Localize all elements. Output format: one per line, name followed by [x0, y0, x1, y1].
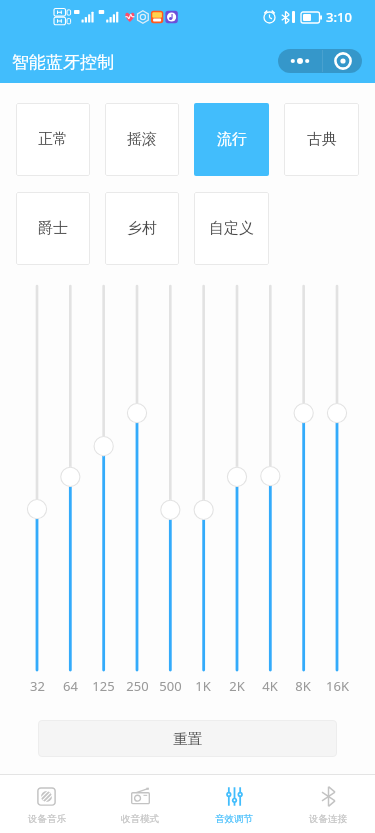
staticText: 1K	[195, 677, 211, 695]
staticText: 500	[159, 677, 182, 695]
staticText: 设备音乐	[28, 813, 66, 825]
button[interactable]: 乡村	[105, 192, 179, 265]
staticText: 智能蓝牙控制	[12, 52, 114, 73]
staticText: 250	[126, 677, 149, 695]
staticText: 8K	[295, 677, 311, 695]
staticText: 4K	[262, 677, 278, 695]
staticText: 32	[30, 677, 45, 695]
button[interactable]: More options	[278, 49, 322, 73]
button[interactable]: Close	[323, 49, 362, 73]
staticText: 3:10	[326, 8, 352, 26]
staticText: 16K	[326, 677, 349, 695]
button[interactable]: 自定义	[194, 192, 269, 265]
staticText: 重置	[173, 730, 202, 748]
staticText: 64	[63, 677, 78, 695]
staticText: 摇滚	[127, 130, 157, 149]
staticText: 音效调节	[215, 813, 253, 825]
button[interactable]: 收音模式	[93, 777, 187, 833]
staticText: 爵士	[38, 219, 68, 238]
staticText: 设备连接	[309, 813, 347, 825]
staticText: 125	[92, 677, 115, 695]
button[interactable]: 摇滚	[105, 103, 179, 176]
button[interactable]: 爵士	[16, 192, 90, 265]
button[interactable]: 音效调节	[187, 777, 281, 833]
staticText: 乡村	[127, 219, 157, 238]
button[interactable]: 古典	[284, 103, 359, 176]
staticText: 收音模式	[121, 813, 159, 825]
staticText: 正常	[38, 130, 68, 149]
staticText: 流行	[217, 130, 247, 149]
button[interactable]: 正常	[16, 103, 90, 176]
button[interactable]: 设备音乐	[0, 777, 93, 833]
staticText: 古典	[307, 130, 337, 149]
staticText: 自定义	[209, 219, 254, 238]
button[interactable]: 设备连接	[281, 777, 375, 833]
staticText: 2K	[229, 677, 245, 695]
button[interactable]: 重置	[38, 720, 337, 757]
button[interactable]: 流行	[194, 103, 269, 176]
